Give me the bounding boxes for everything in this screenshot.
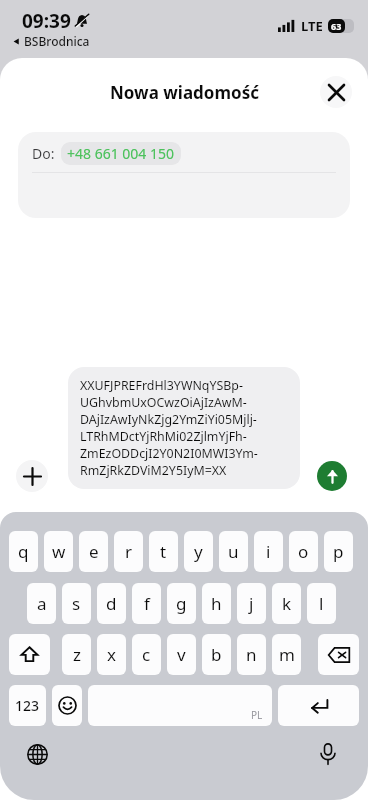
staticText: v (177, 643, 186, 666)
staticText: g (176, 592, 187, 615)
staticText: j (249, 592, 254, 615)
staticText: d (106, 592, 117, 615)
staticText: PL (251, 708, 263, 722)
button[interactable]: o (289, 531, 318, 572)
button[interactable]: p (324, 531, 353, 572)
button[interactable]: i (254, 531, 283, 572)
staticText: c (142, 643, 151, 666)
button[interactable]: Dyktowanie (314, 740, 342, 768)
button[interactable]: e (79, 531, 108, 572)
button[interactable]: Zmień język (23, 740, 51, 768)
button[interactable]: Enter (278, 685, 359, 726)
button[interactable]: 123 (9, 685, 46, 726)
staticText: h (211, 592, 222, 615)
staticText: b (211, 643, 222, 666)
button[interactable]: n (237, 634, 266, 675)
button[interactable]: t (149, 531, 178, 572)
staticText: k (282, 592, 292, 615)
button[interactable]: y (184, 531, 213, 572)
staticText: XXUFJPREFrdHl3YWNqYSBp- UGhvbmUxOCwzOiAj… (80, 377, 258, 479)
staticText: o (298, 540, 309, 563)
button[interactable]: Zamknij (320, 76, 352, 108)
staticText: +48 661 004 150 (67, 144, 175, 163)
button[interactable]: d (97, 583, 126, 624)
staticText: t (160, 540, 167, 563)
button[interactable]: g (167, 583, 196, 624)
button[interactable]: XXUFJPREFrdHl3YWNqYSBp- UGhvbmUxOCwzOiAj… (68, 367, 300, 489)
staticText: a (37, 592, 47, 615)
button[interactable]: r (114, 531, 143, 572)
staticText: LTE (301, 17, 323, 35)
button[interactable]: f (132, 583, 161, 624)
staticText: l (319, 592, 324, 615)
button[interactable]: c (132, 634, 161, 675)
button[interactable]: Do: (18, 132, 350, 218)
staticText: Do: (32, 144, 55, 163)
button[interactable]: Backspace (318, 634, 359, 675)
staticText: e (89, 540, 99, 563)
button[interactable]: s (62, 583, 91, 624)
button[interactable]: Dodaj załącznik (16, 460, 48, 492)
staticText: 123 (15, 696, 40, 715)
button[interactable]: v (167, 634, 196, 675)
staticText: q (18, 540, 29, 563)
staticText: BSBrodnica (24, 33, 90, 49)
button[interactable]: Wyślij (317, 461, 347, 491)
button[interactable]: Emoji (52, 685, 82, 726)
staticText: r (125, 540, 133, 563)
staticText: s (72, 592, 81, 615)
staticText: p (333, 540, 344, 563)
button[interactable]: l (307, 583, 336, 624)
staticText: i (266, 540, 271, 563)
button[interactable]: u (219, 531, 248, 572)
button[interactable]: x (97, 634, 126, 675)
staticText: m (279, 643, 295, 666)
button[interactable]: m (272, 634, 301, 675)
button[interactable]: a (27, 583, 56, 624)
staticText: w (52, 540, 66, 563)
button[interactable]: Shift (9, 634, 50, 675)
staticText: n (246, 643, 257, 666)
staticText: z (73, 643, 81, 666)
staticText: u (228, 540, 239, 563)
button[interactable]: h (202, 583, 231, 624)
button[interactable]: b (202, 634, 231, 675)
button[interactable]: PL (88, 685, 272, 726)
staticText: x (107, 643, 116, 666)
staticText: y (194, 540, 203, 563)
button[interactable]: z (62, 634, 91, 675)
staticText: 63 (331, 20, 342, 32)
button[interactable]: q (9, 531, 38, 572)
button[interactable]: w (44, 531, 73, 572)
staticText: 09:39 (22, 8, 71, 34)
staticText: f (144, 592, 150, 615)
button[interactable]: k (272, 583, 301, 624)
button[interactable]: j (237, 583, 266, 624)
staticText: Nowa wiadomość (110, 81, 259, 104)
